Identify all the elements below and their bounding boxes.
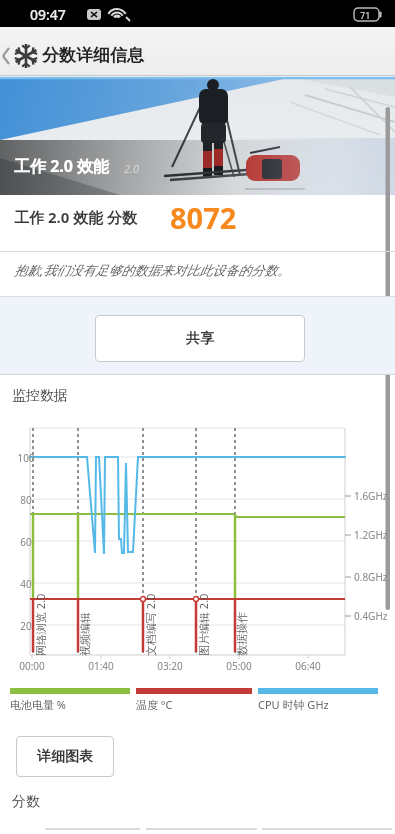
staticText: 00:00 [19,659,45,673]
staticText: 09:47 [30,5,66,24]
staticText: 05:00 [226,659,252,673]
staticText: 03:20 [157,659,183,673]
staticText: 71 [360,9,371,21]
staticText: 网络浏览 2.0 [33,593,48,656]
staticText: 图片编辑 2.0 [196,593,211,656]
staticText: 分数 [12,793,40,811]
button[interactable]: 详细图表 [16,736,114,777]
staticText: 8072 [170,198,237,237]
staticText: 100 [17,451,35,465]
staticText: 分数详细信息 [42,45,144,66]
staticText: 80 [20,493,32,507]
button[interactable]: 共享 [95,315,305,362]
staticText: 视频编辑 [78,612,92,656]
staticText: 40 [20,577,32,591]
staticText: 0.8GHz [354,570,388,584]
staticText: 数据操作 [235,612,249,656]
staticText: 20 [20,619,32,633]
staticText: 共享 [186,330,214,348]
staticText: 电池电量 % [10,697,67,712]
staticText: 详细图表 [37,748,93,766]
staticText: 监控数据 [12,387,68,405]
staticText: 1.2GHz [354,528,388,542]
staticText: 温度 °C [136,697,173,712]
staticText: 60 [20,535,32,549]
staticText: 抱歉,我们没有足够的数据来对比此设备的分数。 [14,261,291,279]
staticText: 06:40 [295,659,321,673]
staticText: 0.4GHz [354,609,388,623]
staticText: 文档编写 2.0 [143,593,158,656]
staticText: 1.6GHz [354,489,388,503]
staticText: 2.0 [124,161,139,176]
staticText: 01:40 [88,659,114,673]
staticText: CPU 时钟 GHz [258,697,329,712]
staticText: 工作 2.0 效能 分数 [14,207,138,227]
staticText: 工作 2.0 效能 [14,155,110,177]
